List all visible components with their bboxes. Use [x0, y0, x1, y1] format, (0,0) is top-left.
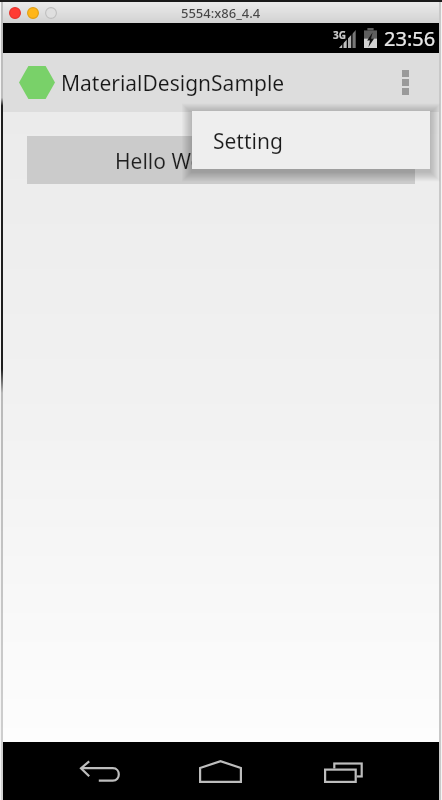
staticText: Hello World! — [115, 147, 236, 176]
staticText: 5554:x86_4.4 — [181, 4, 261, 22]
button[interactable]: Home — [187, 742, 254, 800]
button[interactable]: Back — [66, 742, 133, 800]
staticText: Setting — [213, 127, 283, 156]
staticText: 23:56 — [384, 25, 436, 52]
staticText: MaterialDesignSample — [61, 69, 285, 98]
staticText: 3G — [333, 28, 346, 42]
button[interactable]: More options — [383, 53, 427, 112]
button[interactable]: Hello World! — [27, 136, 415, 184]
button[interactable]: Recent apps — [310, 743, 377, 800]
button[interactable]: Setting — [192, 111, 430, 169]
